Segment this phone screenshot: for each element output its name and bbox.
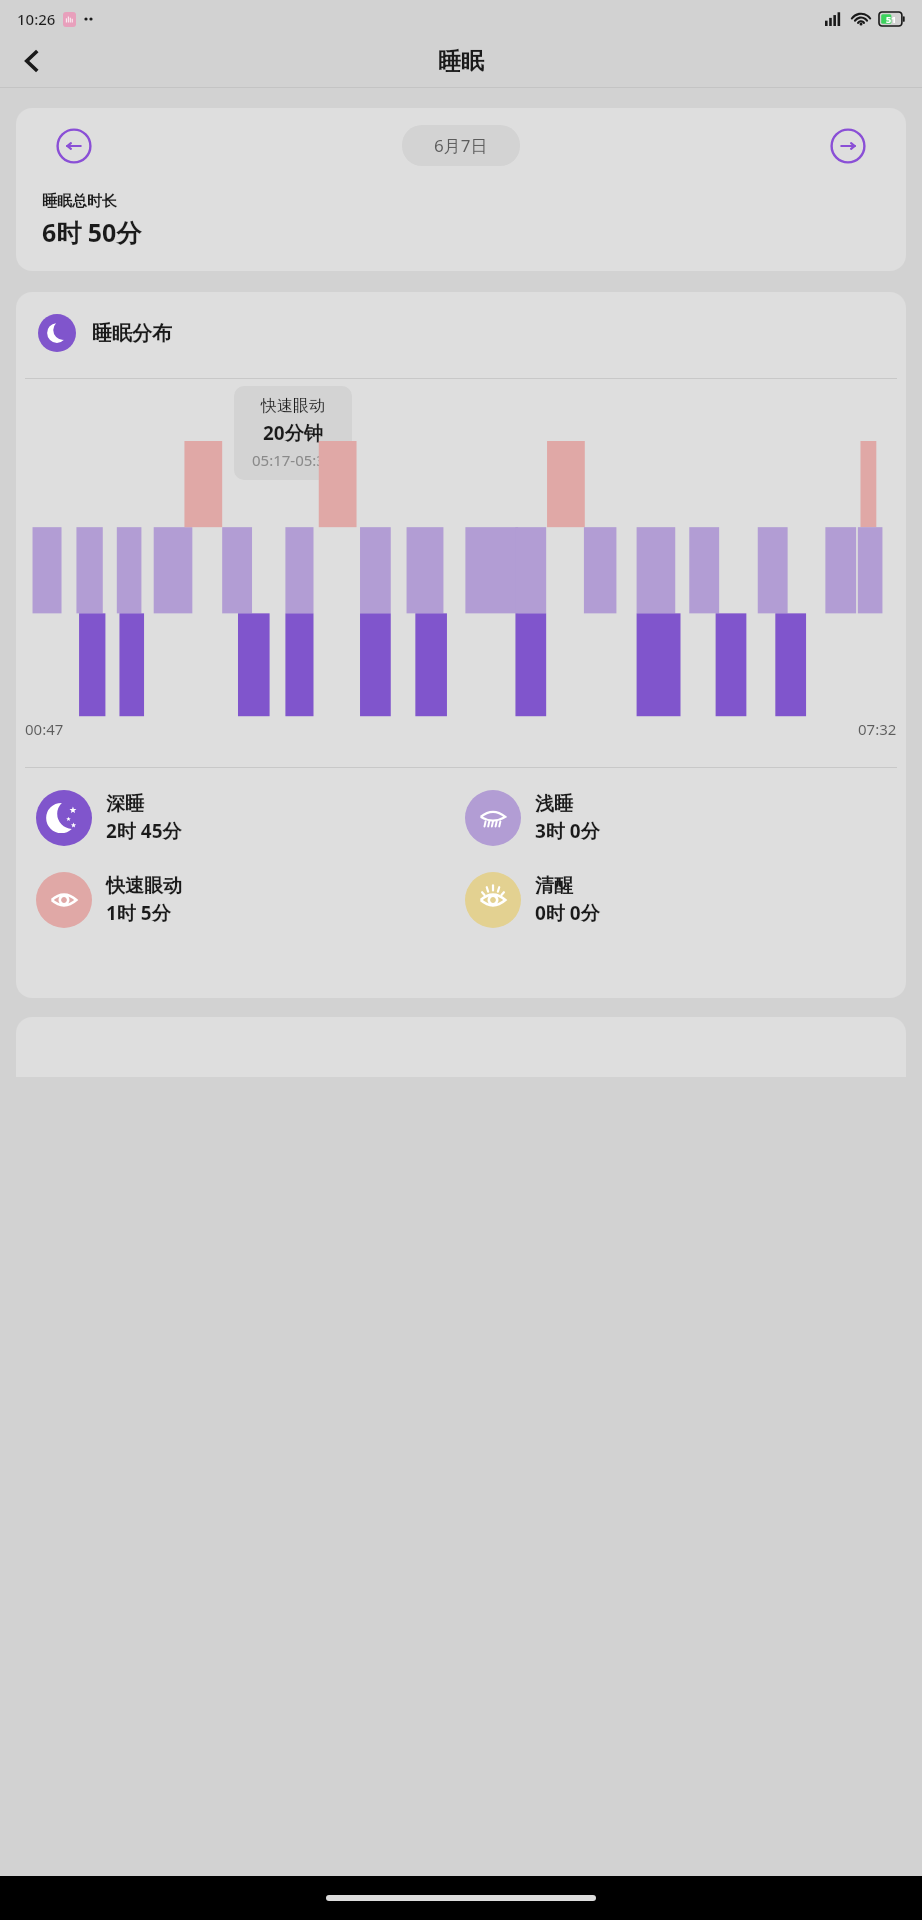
staticText: 10:26 bbox=[17, 9, 56, 29]
button[interactable]: 清醒 bbox=[465, 872, 894, 928]
button[interactable]: Next day bbox=[830, 128, 866, 164]
button[interactable]: 深睡 bbox=[36, 790, 465, 846]
staticText: 00:47 bbox=[25, 719, 64, 739]
button[interactable]: 6月7日 bbox=[402, 125, 520, 166]
button[interactable]: Back bbox=[8, 38, 56, 84]
staticText: 51 bbox=[886, 13, 897, 25]
button[interactable]: 睡眠分布 bbox=[38, 314, 172, 352]
staticText: 浅睡 bbox=[535, 792, 573, 816]
button[interactable]: Previous day bbox=[56, 128, 92, 164]
staticText: 07:32 bbox=[858, 719, 897, 739]
staticText: 0时 0分 bbox=[535, 900, 600, 926]
staticText: 2时 45分 bbox=[106, 818, 182, 844]
staticText: 睡眠分布 bbox=[92, 321, 172, 346]
staticText: 快速眼动 bbox=[261, 396, 325, 416]
staticText: 深睡 bbox=[106, 792, 144, 816]
staticText: 睡眠总时长 bbox=[42, 192, 117, 211]
staticText: 快速眼动 bbox=[106, 874, 182, 898]
staticText: 6月7日 bbox=[434, 134, 488, 157]
staticText: 1时 5分 bbox=[106, 900, 171, 926]
staticText: 05:17-05:37 bbox=[252, 450, 334, 470]
staticText: 6时 50分 bbox=[42, 215, 142, 249]
staticText: 3时 0分 bbox=[535, 818, 600, 844]
button[interactable]: 快速眼动 bbox=[36, 872, 465, 928]
staticText: 清醒 bbox=[535, 874, 573, 898]
staticText: 睡眠 bbox=[438, 47, 484, 76]
button[interactable]: 浅睡 bbox=[465, 790, 894, 846]
staticText: 20分钟 bbox=[263, 420, 323, 446]
